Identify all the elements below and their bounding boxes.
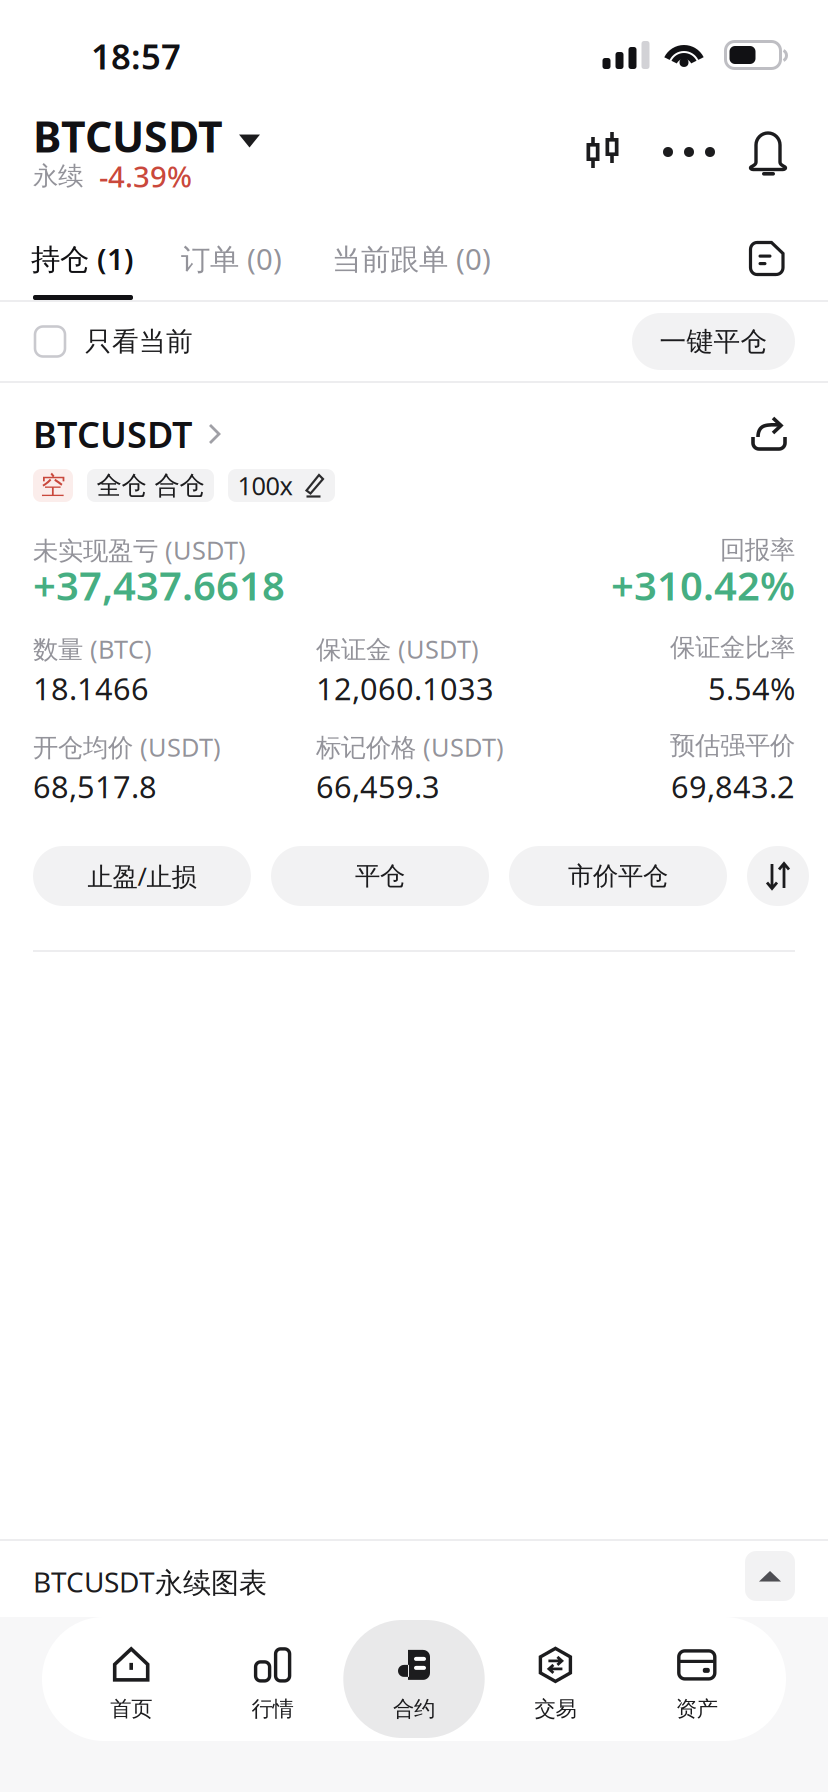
button[interactable]: 合约 (343, 1620, 485, 1738)
button[interactable]: 首页 (60, 1620, 202, 1738)
staticText: BTCUSDT永续图表 (33, 1563, 267, 1600)
staticText: 止盈/止损 (87, 859, 196, 893)
button[interactable]: Notifications (732, 124, 806, 180)
button[interactable]: 平仓 (271, 846, 489, 906)
staticText: 持仓 (1) (31, 239, 134, 278)
staticText: 空 (40, 470, 65, 501)
staticText: 保证金 (USDT) (316, 632, 479, 666)
button[interactable]: 行情 (202, 1620, 343, 1738)
staticText: 未实现盈亏 (USDT) (33, 533, 246, 567)
staticText: 保证金比率 (670, 632, 795, 663)
staticText: 一键平仓 (659, 325, 767, 358)
staticText: 合约 (393, 1696, 435, 1722)
staticText: 18:57 (91, 33, 181, 79)
staticText: 平仓 (355, 860, 405, 891)
button[interactable]: 当前跟单 (0) (305, 217, 518, 300)
staticText: 永续 (33, 160, 83, 191)
staticText: 市价平仓 (568, 860, 668, 891)
staticText: 18.1466 (33, 668, 149, 709)
button[interactable]: BTCUSDT (0, 96, 430, 215)
button[interactable]: BTCUSDT永续图表 (0, 1541, 828, 1617)
staticText: 数量 (BTC) (33, 632, 152, 666)
staticText: 68,517.8 (33, 766, 157, 807)
staticText: 100x (237, 469, 292, 502)
button[interactable]: More (646, 124, 732, 180)
staticText: 12,060.1033 (316, 668, 494, 709)
staticText: 开仓均价 (USDT) (33, 730, 221, 764)
button[interactable]: Share (743, 408, 795, 458)
button[interactable]: 只看当前 (35, 302, 193, 381)
staticText: 行情 (252, 1696, 294, 1722)
button[interactable]: 资产 (626, 1620, 767, 1738)
staticText: -4.39% (99, 156, 192, 195)
button[interactable]: Reverse position (747, 846, 809, 906)
staticText: 66,459.3 (316, 766, 440, 807)
staticText: 标记价格 (USDT) (316, 730, 504, 764)
button[interactable]: 一键平仓 (632, 313, 795, 370)
button[interactable]: 订单 (0) (158, 217, 305, 300)
staticText: 交易 (534, 1696, 576, 1722)
button[interactable]: 交易 (485, 1620, 626, 1738)
staticText: 首页 (110, 1696, 152, 1722)
button[interactable]: BTCUSDT (33, 412, 293, 456)
button[interactable]: Order history (724, 217, 810, 300)
staticText: 当前跟单 (0) (332, 239, 491, 278)
staticText: BTCUSDT (33, 410, 192, 458)
button[interactable]: 止盈/止损 (33, 846, 251, 906)
staticText: 资产 (676, 1696, 718, 1722)
staticText: +310.42% (611, 558, 795, 611)
button[interactable]: Chart (560, 124, 646, 180)
button[interactable]: 市价平仓 (509, 846, 727, 906)
staticText: 订单 (0) (181, 239, 282, 278)
button[interactable]: 100x (228, 469, 335, 502)
button[interactable]: 持仓 (1) (7, 217, 158, 300)
staticText: 预估强平价 (670, 730, 795, 761)
staticText: +37,437.6618 (33, 558, 285, 611)
staticText: 回报率 (720, 534, 795, 565)
staticText: 只看当前 (85, 325, 193, 358)
staticText: 5.54% (708, 668, 795, 709)
staticText: BTCUSDT (33, 108, 223, 164)
staticText: 69,843.2 (671, 766, 795, 807)
staticText: 全仓 合仓 (96, 470, 204, 501)
